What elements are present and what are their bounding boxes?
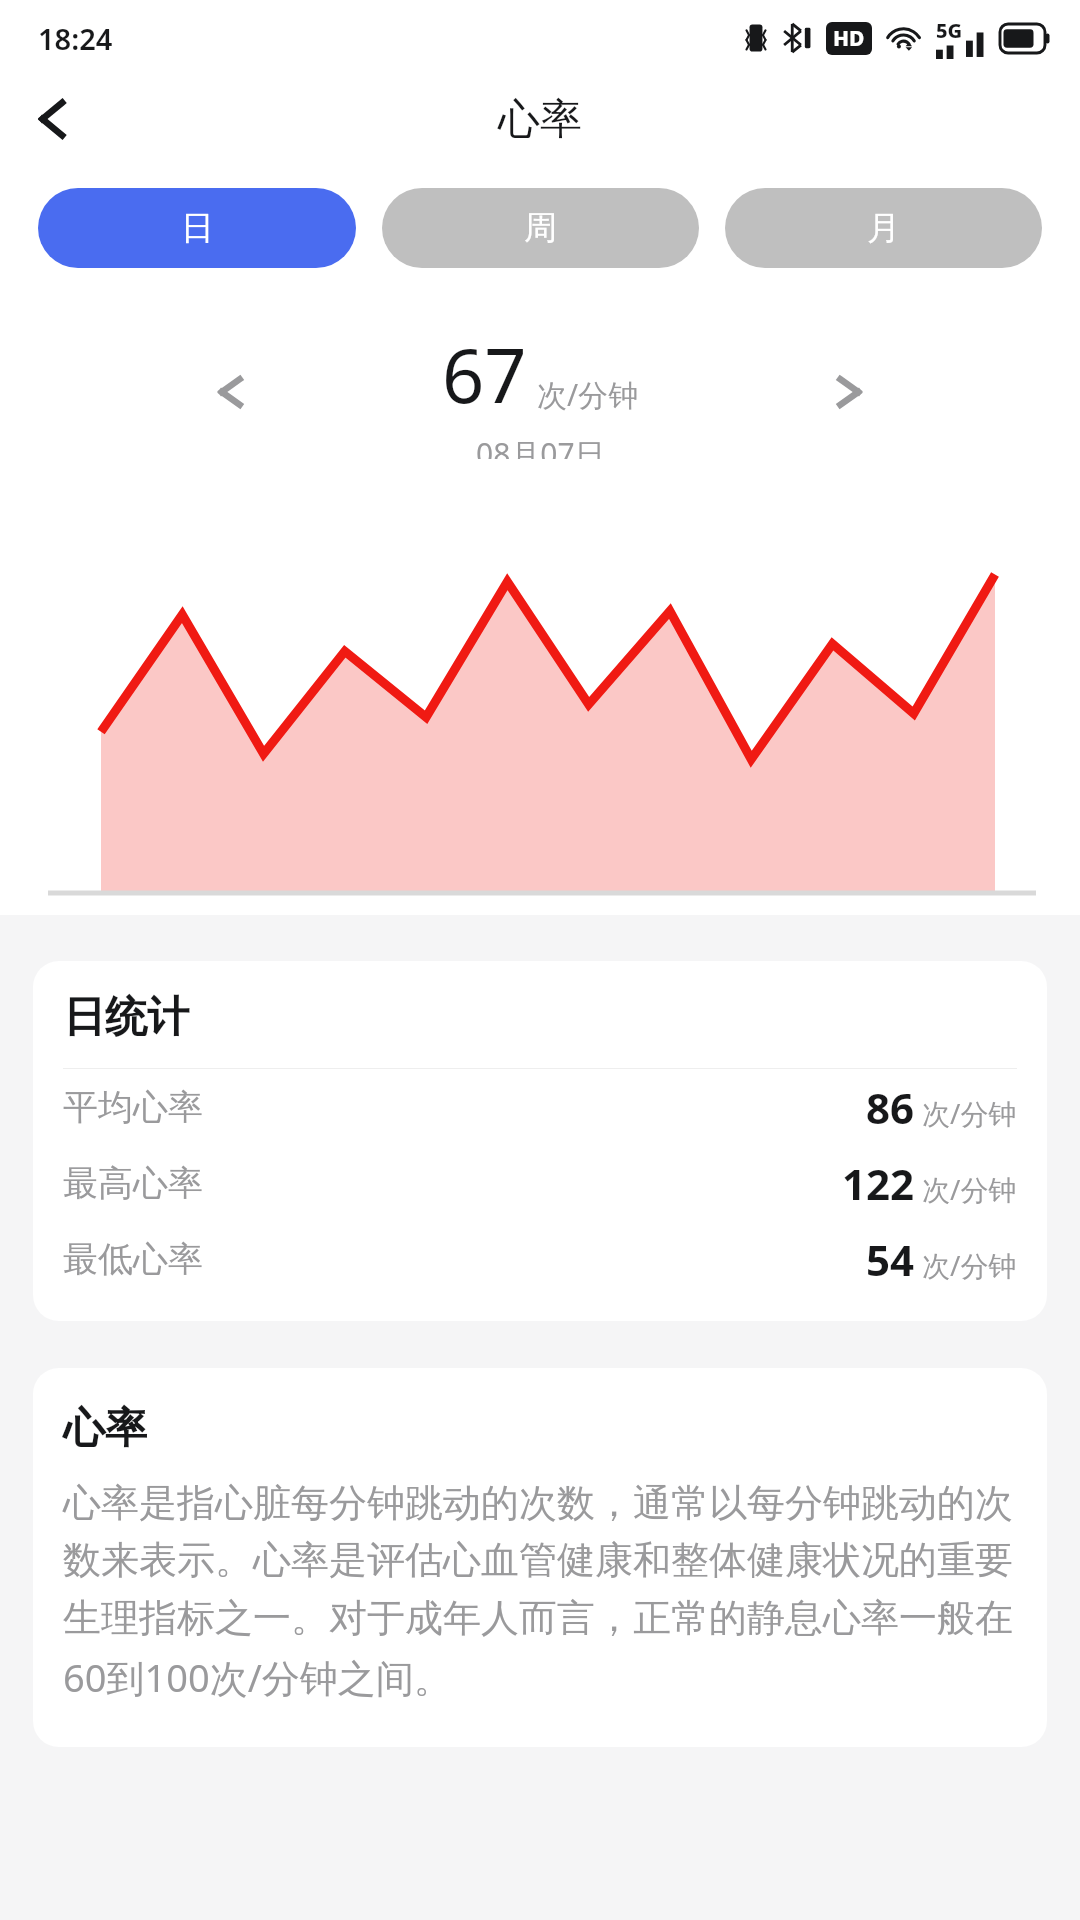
staticText: 次/分钟 [922,1170,1017,1208]
button[interactable]: 最低心率 [63,1221,1017,1297]
staticText: HD [833,24,865,53]
staticText: 日统计 [63,991,189,1044]
staticText: 54 [866,1231,915,1288]
staticText: 次/分钟 [537,374,639,415]
staticText: 5G [936,17,963,44]
staticText: 122 [842,1155,915,1212]
button[interactable]: Back [20,85,88,153]
staticText: 67 [442,324,527,425]
staticText: 最低心率 [63,1237,203,1281]
button[interactable]: 月 [725,188,1042,268]
staticText: 月 [867,207,900,249]
staticText: 平均心率 [63,1085,203,1129]
staticText: 周 [524,207,557,249]
staticText: 18:24 [38,19,113,58]
staticText: 心率是指心脏每分钟跳动的次数，通常以每分钟跳动的次数来表示。心率是评估心血管健康… [63,1479,1017,1703]
staticText: 次/分钟 [922,1246,1017,1284]
button[interactable]: Previous day [200,360,264,424]
button[interactable]: 日 [38,188,356,268]
staticText: 心率 [498,93,582,146]
button[interactable]: 最高心率 [63,1145,1017,1221]
staticText: 最高心率 [63,1161,203,1205]
staticText: 次/分钟 [922,1094,1017,1132]
staticText: 日 [181,207,214,249]
staticText: 心率 [63,1402,147,1455]
staticText: 86 [866,1079,915,1136]
button[interactable]: 周 [382,188,699,268]
button[interactable]: Next day [816,360,880,424]
button[interactable]: 平均心率 [63,1069,1017,1145]
staticText: 08月07日 [476,433,605,459]
